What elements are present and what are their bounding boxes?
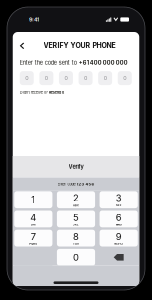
button[interactable]: 4: [14, 210, 52, 227]
button[interactable]: 8: [57, 230, 95, 246]
button[interactable]: Enter code 123 456: [13, 177, 139, 191]
button[interactable]: 0: [57, 249, 95, 266]
staticText: 1: [31, 194, 35, 205]
staticText: 0: [84, 75, 87, 81]
staticText: DEF: [116, 204, 122, 207]
staticText: 9:41: [29, 16, 39, 23]
staticText: Verify: [68, 163, 83, 170]
staticText: 0: [123, 75, 126, 81]
staticText: 8: [73, 231, 79, 242]
button[interactable]: Back: [16, 35, 28, 51]
staticText: JKL: [73, 223, 79, 226]
button[interactable]: 9: [100, 230, 138, 246]
button[interactable]: 6: [100, 210, 138, 227]
staticText: PQRS: [29, 242, 37, 245]
staticText: 9: [116, 231, 122, 242]
staticText: 7: [31, 231, 36, 242]
staticText: WXYZ: [114, 242, 123, 245]
staticText: MNO: [116, 223, 122, 226]
button[interactable]: 7: [14, 230, 52, 246]
staticText: 0: [73, 252, 79, 263]
staticText: Didn't receive it? Resend it: [20, 90, 64, 95]
staticText: 2: [73, 192, 79, 204]
staticText: GHI: [31, 223, 36, 226]
button[interactable]: Didn't receive it? Resend it: [20, 90, 64, 95]
staticText: 0: [104, 75, 107, 81]
button[interactable]: 1: [14, 191, 52, 208]
button[interactable]: 3: [100, 191, 138, 208]
button[interactable]: Verify: [13, 156, 139, 177]
button[interactable]: Delete: [100, 249, 138, 266]
staticText: ABC: [73, 204, 79, 207]
staticText: 6: [116, 212, 122, 223]
staticText: Enter the code sent to +61 400 000 000: [20, 59, 128, 66]
staticText: 0: [64, 75, 67, 81]
button[interactable]: 2: [57, 191, 95, 208]
button[interactable]: 5: [57, 210, 95, 227]
staticText: 5: [73, 212, 79, 223]
staticText: TUV: [73, 242, 79, 245]
staticText: 4: [30, 212, 36, 223]
staticText: 0: [45, 75, 48, 81]
staticText: 0: [25, 75, 28, 81]
staticText: Enter code 123 456: [57, 182, 94, 186]
staticText: VERIFY YOUR PHONE: [43, 41, 115, 50]
staticText: 3: [116, 192, 122, 204]
